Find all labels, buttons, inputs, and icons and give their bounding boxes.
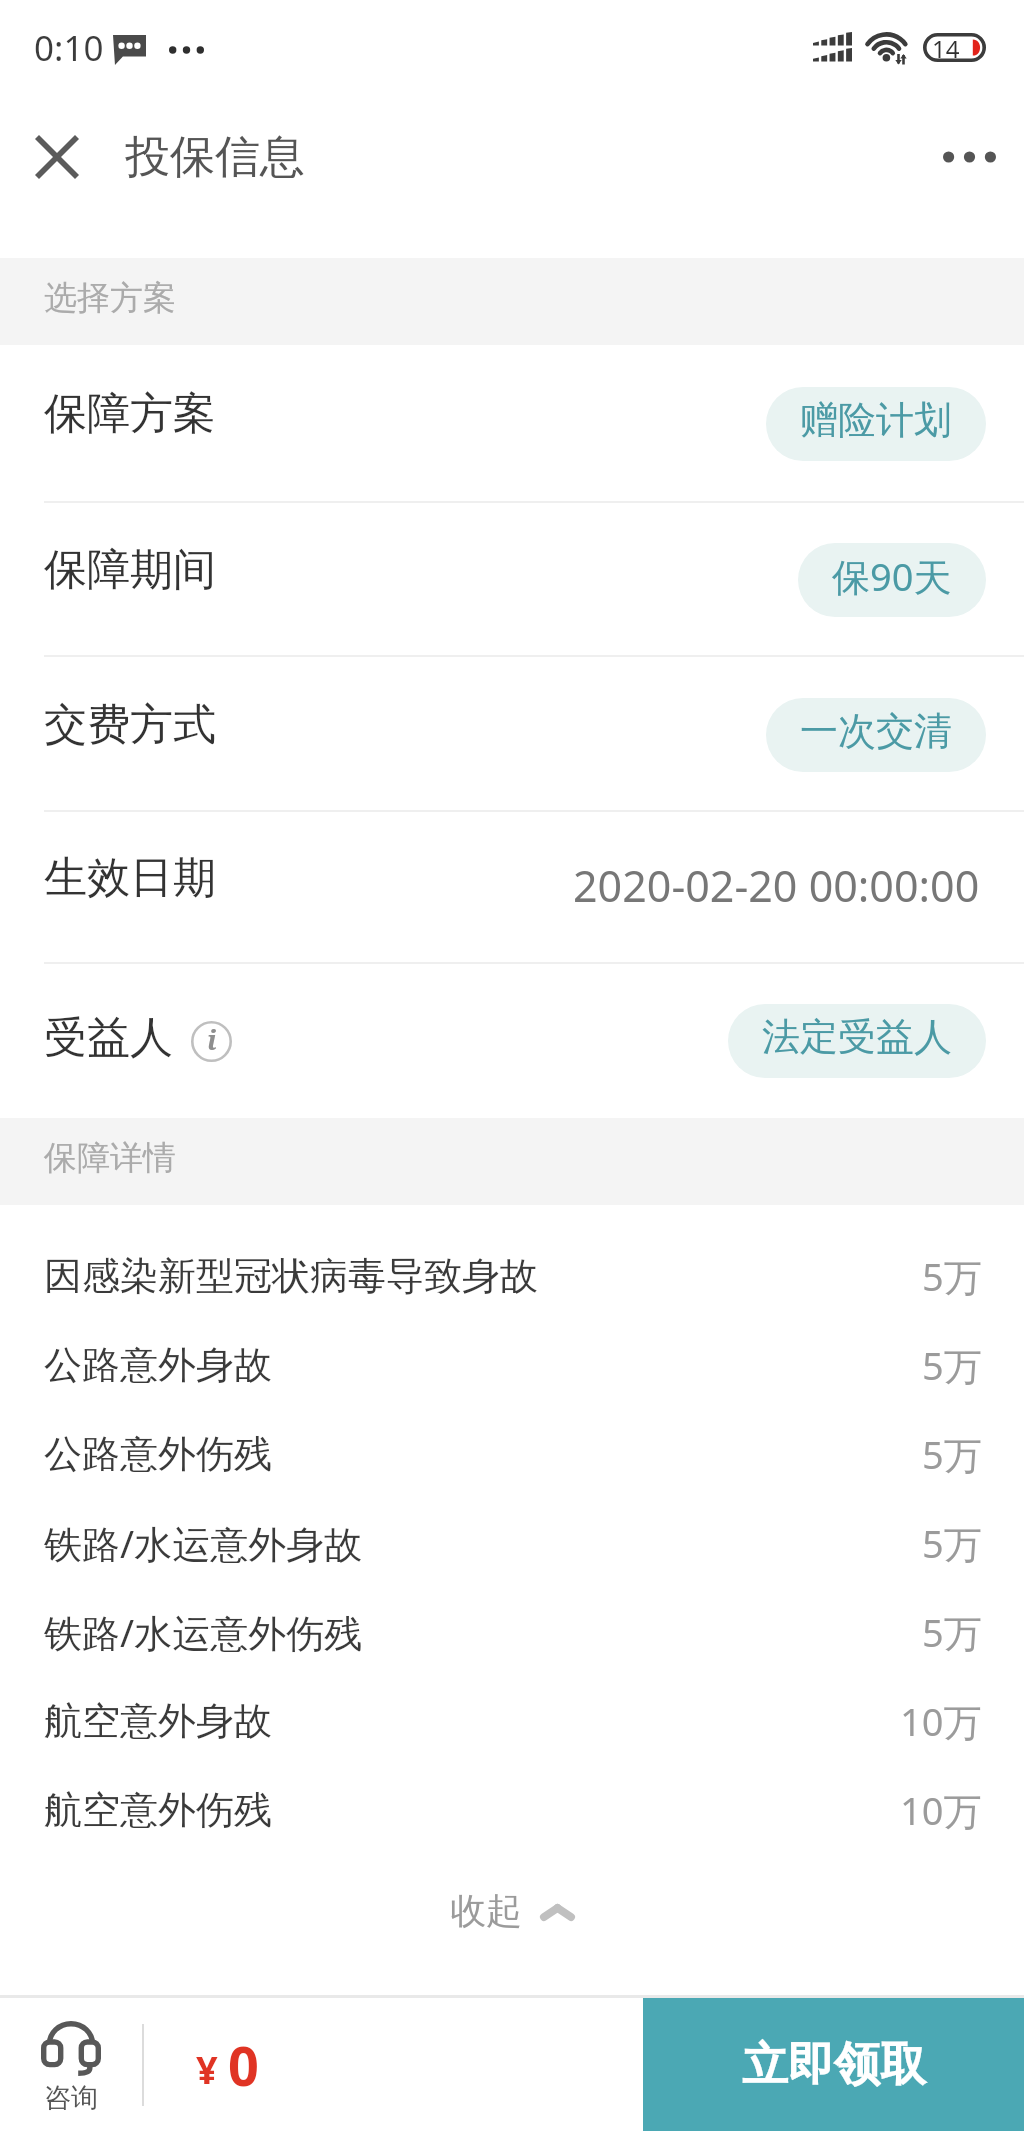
staticText: 咨询 — [44, 2081, 98, 2115]
button[interactable]: 保障方案 — [0, 345, 1024, 503]
button[interactable]: 受益人 — [0, 964, 1024, 1118]
staticText: 赠险计划 — [800, 396, 952, 444]
staticText: 立即领取 — [742, 2036, 926, 2094]
staticText: 铁路/水运意外身故 — [44, 1517, 363, 1569]
staticText: 5万 — [922, 1428, 982, 1480]
staticText: 一次交清 — [800, 707, 952, 755]
staticText: 5万 — [922, 1517, 982, 1569]
staticText: ¥ — [196, 2043, 218, 2095]
staticText: 保障方案 — [44, 387, 216, 441]
staticText: 公路意外伤残 — [44, 1430, 272, 1478]
staticText: 交费方式 — [44, 698, 216, 752]
staticText: 选择方案 — [44, 277, 176, 319]
staticText: 因感染新型冠状病毒导致身故 — [44, 1252, 538, 1300]
staticText: 10万 — [900, 1695, 982, 1747]
button[interactable]: 交费方式 — [0, 657, 1024, 812]
staticText: 保障详情 — [44, 1137, 176, 1179]
button[interactable]: 立即领取 — [643, 1998, 1024, 2131]
button[interactable]: Close — [16, 116, 98, 198]
staticText: 0 — [228, 2028, 259, 2102]
staticText: 保障期间 — [44, 543, 216, 597]
staticText: 2020-02-20 00:00:00 — [573, 856, 980, 915]
staticText: 5万 — [922, 1339, 982, 1391]
button[interactable]: 收起 — [0, 1854, 1024, 1967]
staticText: 公路意外身故 — [44, 1341, 272, 1389]
staticText: 收起 — [450, 1888, 522, 1933]
staticText: 5万 — [922, 1606, 982, 1658]
staticText: 投保信息 — [125, 129, 305, 186]
button[interactable]: Beneficiary info — [191, 1021, 232, 1062]
staticText: 保90天 — [832, 550, 952, 602]
staticText: 10万 — [900, 1784, 982, 1836]
button[interactable]: 咨询 Customer service — [0, 1998, 142, 2131]
staticText: 生效日期 — [44, 851, 216, 905]
button[interactable]: More options — [926, 114, 1012, 200]
staticText: 14 — [932, 32, 960, 61]
staticText: 法定受益人 — [762, 1013, 952, 1061]
staticText: 5万 — [922, 1250, 982, 1302]
staticText: 铁路/水运意外伤残 — [44, 1606, 363, 1658]
staticText: 0:10 — [34, 24, 104, 72]
staticText: 航空意外身故 — [44, 1697, 272, 1745]
button[interactable]: 保障期间 — [0, 503, 1024, 657]
staticText: i — [207, 1021, 217, 1058]
staticText: 航空意外伤残 — [44, 1786, 272, 1834]
staticText: 受益人 — [44, 1011, 173, 1065]
button[interactable]: 生效日期 — [0, 812, 1024, 964]
